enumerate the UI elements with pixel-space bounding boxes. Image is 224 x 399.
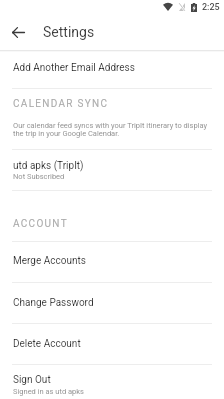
staticText: Sign Out: [13, 374, 51, 386]
staticText: Signed in as utd apks: [13, 387, 84, 396]
staticText: Change Password: [13, 297, 94, 309]
staticText: Delete Account: [13, 338, 81, 350]
staticText: Settings: [43, 24, 95, 40]
button[interactable]: [0, 51, 224, 88]
staticText: Merge Accounts: [13, 255, 86, 267]
button[interactable]: [0, 149, 224, 190]
staticText: Not Subscribed: [13, 172, 65, 181]
button[interactable]: [0, 282, 224, 323]
button[interactable]: Back: [6, 14, 30, 50]
staticText: utd apks (TripIt): [13, 160, 84, 172]
button[interactable]: [0, 364, 224, 399]
staticText: 2:25: [202, 2, 220, 13]
staticText: the trip in your Google Calendar.: [13, 129, 120, 138]
button[interactable]: [0, 241, 224, 282]
staticText: CALENDAR SYNC: [13, 98, 109, 110]
staticText: ACCOUNT: [13, 218, 68, 230]
staticText: Add Another Email Address: [13, 62, 135, 74]
staticText: Our calendar feed syncs with your TripIt…: [13, 121, 208, 130]
button[interactable]: [0, 323, 224, 364]
